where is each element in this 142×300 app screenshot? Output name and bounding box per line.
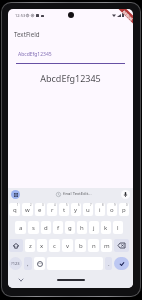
staticText: p [122,206,126,214]
button[interactable]: , [24,257,32,270]
button[interactable]: Shift [9,239,23,252]
button[interactable]: s [28,221,39,234]
staticText: f [57,224,60,232]
button[interactable]: a [15,221,26,234]
button[interactable]: u [83,203,93,216]
staticText: 2 [30,203,32,207]
staticText: b [79,242,83,250]
button[interactable]: p [119,203,129,216]
button[interactable]: ?123 [9,257,22,270]
button[interactable]: . [105,257,112,270]
staticText: x [40,242,44,250]
staticText: w [25,206,30,214]
staticText: c [53,242,56,250]
button[interactable]: z [25,239,35,252]
staticText: u [86,206,90,214]
staticText: 8 [102,203,104,207]
button[interactable]: Emoji [34,257,45,270]
staticText: final TextEdit... [63,191,92,197]
staticText: , [27,260,29,268]
staticText: d [44,224,48,232]
staticText: ?123 [11,261,20,266]
staticText: i [99,206,101,214]
button[interactable]: h [77,221,87,234]
staticText: 5 [66,203,68,207]
staticText: y [74,206,78,214]
staticText: v [66,242,70,250]
button[interactable]: k [101,221,111,234]
staticText: 1 [17,203,19,207]
staticText: o [110,206,114,214]
staticText: a [19,224,23,232]
button[interactable]: Voice input [121,190,130,199]
staticText: k [104,224,108,232]
staticText: 6 [78,203,80,207]
button[interactable]: r [47,203,57,216]
staticText: AbcdEfg12345 [18,51,52,58]
staticText: h [80,224,84,232]
staticText: . [108,260,110,268]
button[interactable]: f [53,221,63,234]
button[interactable]: g [65,221,75,234]
staticText: 9 [114,203,116,207]
staticText: 4 [54,203,56,207]
button[interactable]: l [113,221,123,234]
staticText: AbcdEfg12345 [8,72,133,84]
button[interactable]: n [88,239,99,252]
staticText: 12:53 [15,13,26,18]
button[interactable]: e [35,203,45,216]
button[interactable]: v [62,239,73,252]
button[interactable]: w [22,203,33,216]
staticText: e [38,206,42,214]
button[interactable]: q [9,203,20,216]
button[interactable]: j [89,221,99,234]
button[interactable]: Backspace [114,239,129,252]
button[interactable]: x [37,239,47,252]
button[interactable]: c [49,239,60,252]
button[interactable]: Hide keyboard [17,276,25,284]
button[interactable]: Google [11,190,20,199]
staticText: m [104,242,110,250]
staticText: q [13,206,17,214]
staticText: n [92,242,96,250]
button[interactable]: y [71,203,81,216]
button[interactable]: m [101,239,112,252]
staticText: t [63,206,66,214]
staticText: s [32,224,35,232]
staticText: l [117,224,119,232]
staticText: TextField [14,30,40,38]
button[interactable]: final TextEdit... [56,191,92,197]
staticText: j [93,224,95,232]
staticText: 3 [42,203,44,207]
staticText: z [29,242,32,250]
staticText: g [68,224,72,232]
staticText: 0 [126,203,128,207]
button[interactable]: t [59,203,69,216]
button[interactable]: i [95,203,105,216]
button[interactable]: d [41,221,51,234]
staticText: r [51,206,54,214]
staticText: 7 [90,203,92,207]
button[interactable]: b [75,239,86,252]
button[interactable]: Enter [114,257,129,270]
staticText: DEBUG [122,9,133,22]
button[interactable]: o [107,203,117,216]
